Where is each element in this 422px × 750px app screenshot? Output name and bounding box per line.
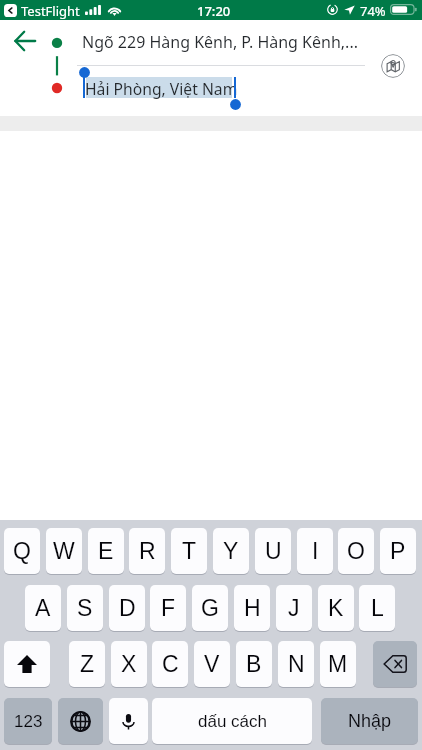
- button[interactable]: S: [67, 585, 103, 631]
- staticText: T: [182, 538, 197, 564]
- staticText: Y: [223, 538, 239, 564]
- button[interactable]: Choose on map: [381, 54, 405, 78]
- button[interactable]: N: [278, 641, 314, 687]
- button[interactable]: I: [297, 528, 333, 574]
- staticText: N: [288, 651, 305, 677]
- staticText: 123: [14, 712, 43, 731]
- staticText: I: [312, 538, 319, 564]
- button[interactable]: P: [380, 528, 416, 574]
- button[interactable]: F: [150, 585, 186, 631]
- staticText: S: [77, 595, 93, 621]
- staticText: G: [201, 595, 219, 621]
- button[interactable]: W: [46, 528, 82, 574]
- staticText: X: [121, 651, 137, 677]
- staticText: TestFlight: [21, 2, 80, 20]
- button[interactable]: H: [234, 585, 270, 631]
- staticText: K: [328, 595, 344, 621]
- button[interactable]: Z: [69, 641, 105, 687]
- staticText: dấu cách: [198, 712, 267, 731]
- button[interactable]: dấu cách: [152, 698, 312, 744]
- button[interactable]: Backspace: [373, 641, 417, 687]
- button[interactable]: A: [25, 585, 61, 631]
- button[interactable]: Change keyboard: [58, 698, 103, 744]
- button[interactable]: M: [320, 641, 356, 687]
- staticText: U: [265, 538, 282, 564]
- staticText: L: [371, 595, 384, 621]
- button[interactable]: X: [111, 641, 147, 687]
- staticText: 74%: [360, 2, 386, 20]
- button[interactable]: Ngõ 229 Hàng Kênh, P. Hàng Kênh,...: [82, 31, 358, 53]
- staticText: W: [53, 538, 75, 564]
- button[interactable]: J: [276, 585, 312, 631]
- staticText: A: [35, 595, 51, 621]
- staticText: F: [161, 595, 176, 621]
- button[interactable]: E: [88, 528, 124, 574]
- button[interactable]: Back: [10, 26, 40, 56]
- button[interactable]: C: [152, 641, 188, 687]
- staticText: V: [204, 651, 220, 677]
- button[interactable]: O: [338, 528, 374, 574]
- button[interactable]: Y: [213, 528, 249, 574]
- staticText: O: [347, 538, 365, 564]
- staticText: Q: [13, 538, 31, 564]
- staticText: J: [288, 595, 300, 621]
- button[interactable]: Back to TestFlight: [4, 4, 17, 17]
- staticText: 17:20: [197, 2, 231, 20]
- staticText: D: [119, 595, 136, 621]
- button[interactable]: B: [236, 641, 272, 687]
- staticText: M: [328, 651, 348, 677]
- staticText: P: [390, 538, 406, 564]
- button[interactable]: K: [318, 585, 354, 631]
- button[interactable]: Dictate: [109, 698, 148, 744]
- button[interactable]: Nhập: [321, 698, 418, 744]
- button[interactable]: D: [109, 585, 145, 631]
- button[interactable]: Shift: [4, 641, 50, 687]
- staticText: B: [246, 651, 262, 677]
- staticText: C: [162, 651, 179, 677]
- staticText: H: [244, 595, 261, 621]
- staticText: E: [98, 538, 114, 564]
- button[interactable]: L: [359, 585, 395, 631]
- button[interactable]: R: [129, 528, 165, 574]
- button[interactable]: T: [171, 528, 207, 574]
- button[interactable]: U: [255, 528, 291, 574]
- staticText: Nhập: [348, 711, 392, 731]
- button[interactable]: Q: [4, 528, 40, 574]
- button[interactable]: V: [194, 641, 230, 687]
- button[interactable]: G: [192, 585, 228, 631]
- button[interactable]: 123: [4, 698, 52, 744]
- button[interactable]: Hải Phòng, Việt Nam: [85, 78, 238, 99]
- staticText: R: [139, 538, 156, 564]
- staticText: Z: [80, 651, 95, 677]
